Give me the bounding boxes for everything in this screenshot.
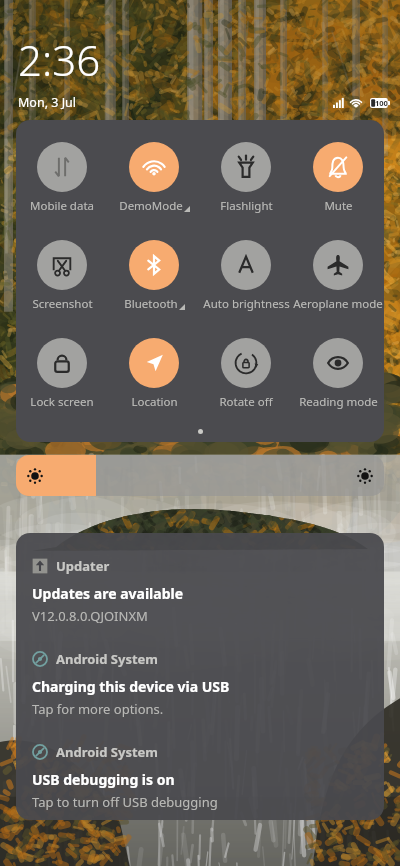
staticText: Android System [56, 650, 159, 668]
staticText: Rotate off [219, 394, 273, 410]
staticText: Auto brightness [203, 296, 290, 312]
button[interactable]: DemoMode [108, 142, 200, 214]
staticText: 2:36 [18, 31, 101, 88]
button[interactable]: Location [108, 338, 200, 410]
staticText: DemoMode [119, 198, 183, 214]
staticText: Flashlight [220, 198, 273, 214]
staticText: Updates are available [32, 584, 184, 603]
staticText: Updater [56, 557, 110, 575]
staticText: Aeroplane mode [293, 296, 383, 312]
staticText: Bluetooth [124, 296, 178, 312]
button[interactable]: Android System [16, 718, 384, 811]
staticText: Mon, 3 Jul [18, 94, 76, 111]
staticText: 100 [375, 98, 388, 108]
staticText: Mute [324, 198, 353, 214]
staticText: Screenshot [32, 296, 93, 312]
staticText: Tap for more options. [32, 700, 164, 718]
staticText: Tap to turn off USB debugging [32, 793, 218, 811]
staticText: Lock screen [30, 394, 94, 410]
button[interactable]: Aeroplane mode [292, 240, 384, 312]
staticText: Reading mode [299, 394, 378, 410]
button[interactable]: Flashlight [200, 142, 292, 214]
button[interactable]: Brightness [16, 455, 384, 496]
button[interactable]: Rotate off [200, 338, 292, 410]
button[interactable]: Reading mode [292, 338, 384, 410]
button[interactable]: Mute [292, 142, 384, 214]
staticText: Charging this device via USB [32, 677, 230, 696]
button[interactable]: Updater [16, 533, 384, 625]
staticText: USB debugging is on [32, 770, 175, 789]
button[interactable]: Auto brightness [200, 240, 292, 312]
button[interactable]: Bluetooth [108, 240, 200, 312]
button[interactable]: Screenshot [16, 240, 108, 312]
staticText: Mobile data [30, 198, 94, 214]
staticText: V12.0.8.0.QJOINXM [32, 607, 148, 625]
staticText: Location [131, 394, 178, 410]
button[interactable]: Android System [16, 625, 384, 718]
button[interactable]: Lock screen [16, 338, 108, 410]
button[interactable]: Mobile data [16, 142, 108, 214]
staticText: Android System [56, 743, 159, 761]
